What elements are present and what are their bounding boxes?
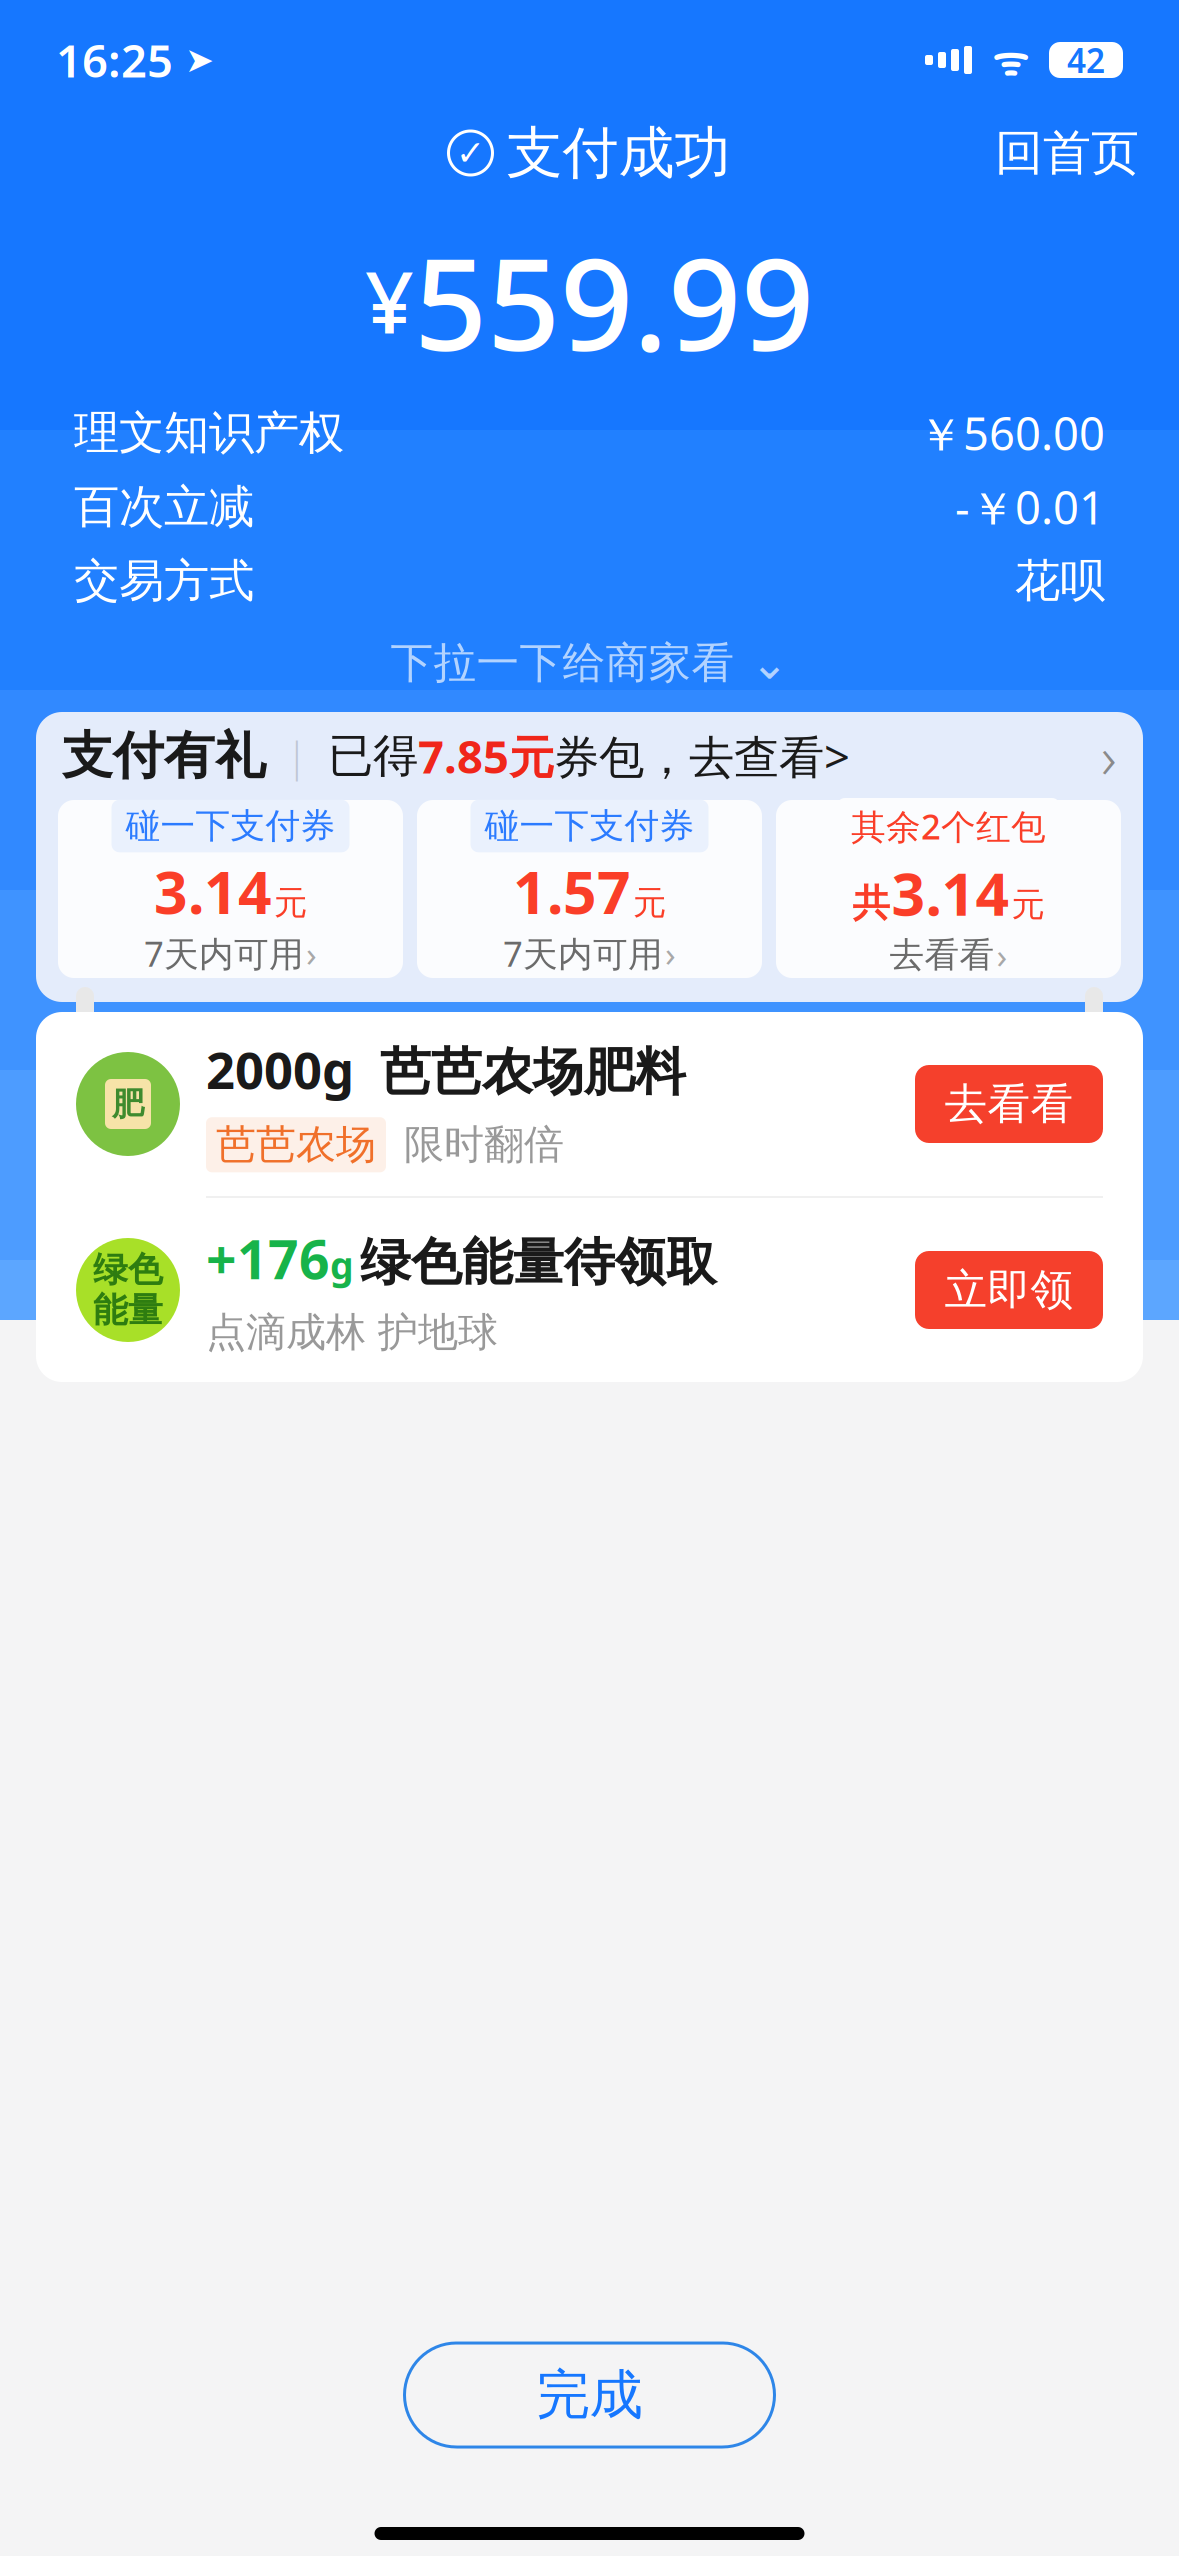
staticText: 交易方式	[74, 553, 254, 609]
staticText: 理文知识产权	[74, 405, 344, 461]
staticText: 限时翻倍	[404, 1120, 564, 1169]
staticText: 其余2个红包	[851, 803, 1046, 849]
staticText: 完成	[536, 2362, 642, 2428]
staticText: 去看看	[944, 1078, 1073, 1130]
staticText: ✓	[456, 133, 485, 173]
staticText: 7.85元	[418, 726, 554, 786]
staticText: 7天内可用	[503, 930, 663, 976]
staticText: g	[330, 1240, 354, 1289]
staticText: 回首页	[995, 123, 1139, 182]
staticText: 芭芭农场	[216, 1120, 376, 1169]
staticText: 元	[1011, 884, 1044, 925]
staticText: 支付有礼	[62, 725, 266, 787]
staticText: 1.57	[513, 852, 631, 930]
staticText: 肥	[112, 1084, 144, 1124]
staticText: 百次立减	[74, 479, 254, 535]
staticText: ￥560.00	[918, 403, 1105, 463]
staticText: 去看看	[889, 934, 994, 976]
staticText: 3.14	[154, 852, 272, 930]
staticText: 碰一下支付券	[125, 805, 335, 847]
staticText: ›	[996, 932, 1007, 978]
staticText: ⌄	[750, 637, 788, 689]
staticText: 券包，去查看>	[554, 726, 850, 786]
staticText: 支付成功	[506, 119, 730, 187]
staticText: 559.99	[414, 216, 814, 386]
staticText: 共	[852, 880, 889, 926]
staticText: ➤	[173, 40, 214, 80]
staticText: ›	[306, 930, 317, 976]
staticText: +176	[206, 1223, 330, 1294]
staticText: ᯤ	[972, 33, 1049, 86]
staticText: -￥0.01	[955, 477, 1105, 537]
staticText: 碰一下支付券	[484, 805, 694, 847]
staticText: ¥	[365, 244, 414, 358]
staticText: 点滴成林 护地球	[206, 1308, 498, 1357]
staticText: 绿色	[93, 1248, 163, 1291]
staticText: 立即领	[944, 1264, 1073, 1316]
staticText: ›	[665, 930, 676, 976]
staticText: 2000g 芭芭农场肥料	[206, 1036, 686, 1103]
staticText: 花呗	[1015, 553, 1105, 609]
staticText: 已得	[328, 728, 418, 784]
staticText: 42	[1067, 38, 1105, 82]
button[interactable]: 绿色	[36, 1198, 1143, 1382]
staticText: 16:25	[56, 30, 173, 90]
staticText: 能量	[93, 1289, 163, 1332]
staticText: 元	[274, 882, 307, 923]
staticText: ›	[1101, 717, 1117, 795]
staticText: 下拉一下给商家看	[390, 637, 734, 689]
staticText: 7天内可用	[144, 930, 304, 976]
button[interactable]: 肥	[36, 1012, 1143, 1196]
button[interactable]: 回首页	[985, 115, 1149, 190]
staticText: 元	[633, 882, 666, 923]
button[interactable]: 完成	[404, 2343, 774, 2447]
staticText: |	[266, 729, 328, 782]
staticText: 3.14	[891, 854, 1009, 932]
button[interactable]: 立即领	[915, 1251, 1103, 1329]
staticText: 绿色能量待领取	[360, 1231, 717, 1293]
button[interactable]: 支付有礼	[36, 712, 1143, 1002]
button[interactable]: 去看看	[915, 1065, 1103, 1143]
